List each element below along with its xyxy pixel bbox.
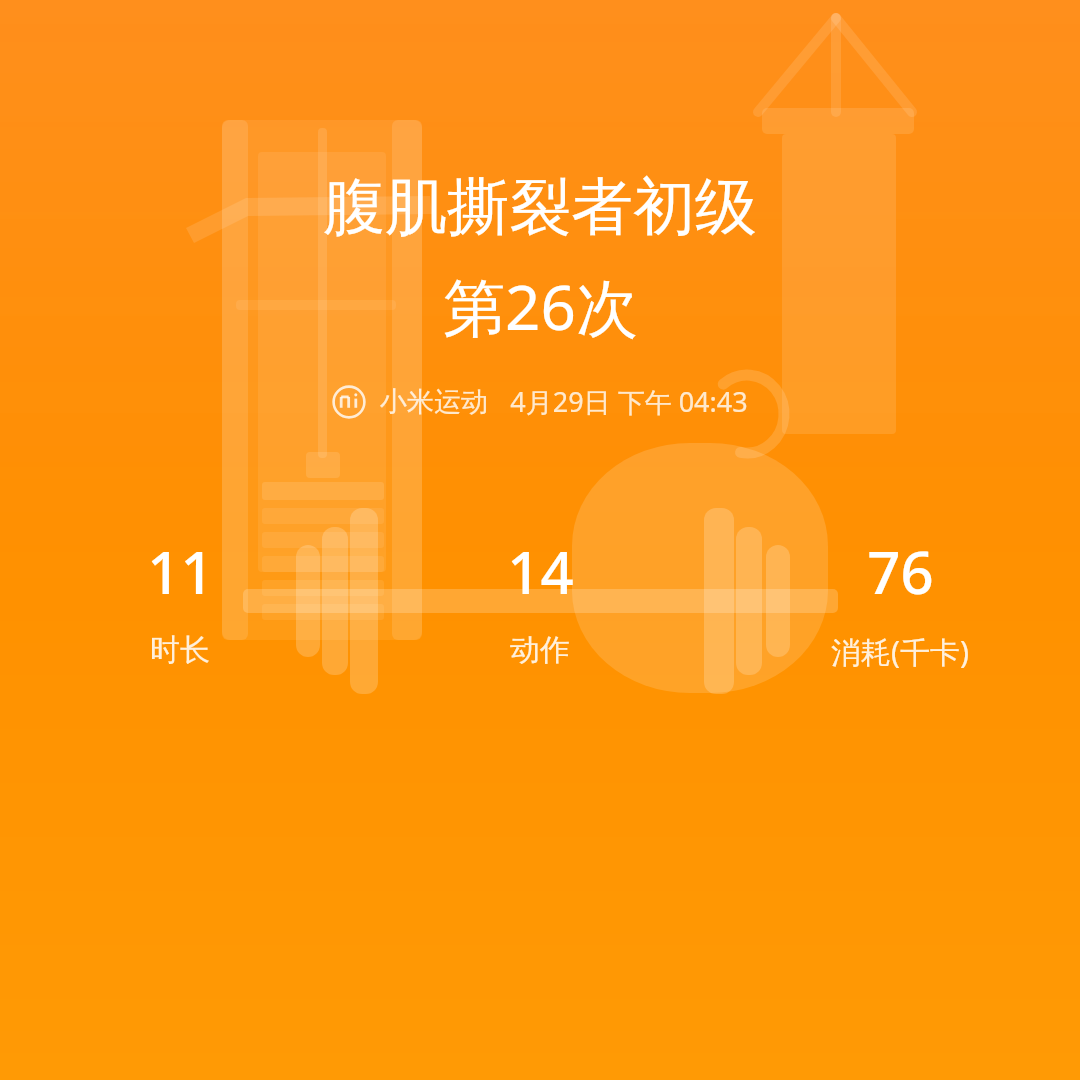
staticText: 第26次 — [443, 264, 638, 349]
staticText: 时长 — [150, 631, 210, 669]
staticText: 4月29日 下午 04:43 — [510, 383, 748, 420]
staticText: 76 — [867, 532, 934, 611]
staticText: 腹肌撕裂者初级 — [323, 168, 757, 246]
staticText: 11 — [147, 532, 214, 611]
staticText: 动作 — [510, 631, 570, 669]
button[interactable]: 76 — [720, 532, 1080, 672]
other: Mi Fit logo — [332, 385, 366, 419]
button[interactable]: 11 — [0, 532, 360, 669]
staticText: 小米运动 — [380, 385, 488, 419]
staticText: 消耗(千卡) — [831, 631, 969, 672]
button[interactable]: 14 — [360, 532, 720, 669]
button[interactable]: Mi Fit logo — [332, 383, 748, 420]
staticText: 14 — [507, 532, 574, 611]
